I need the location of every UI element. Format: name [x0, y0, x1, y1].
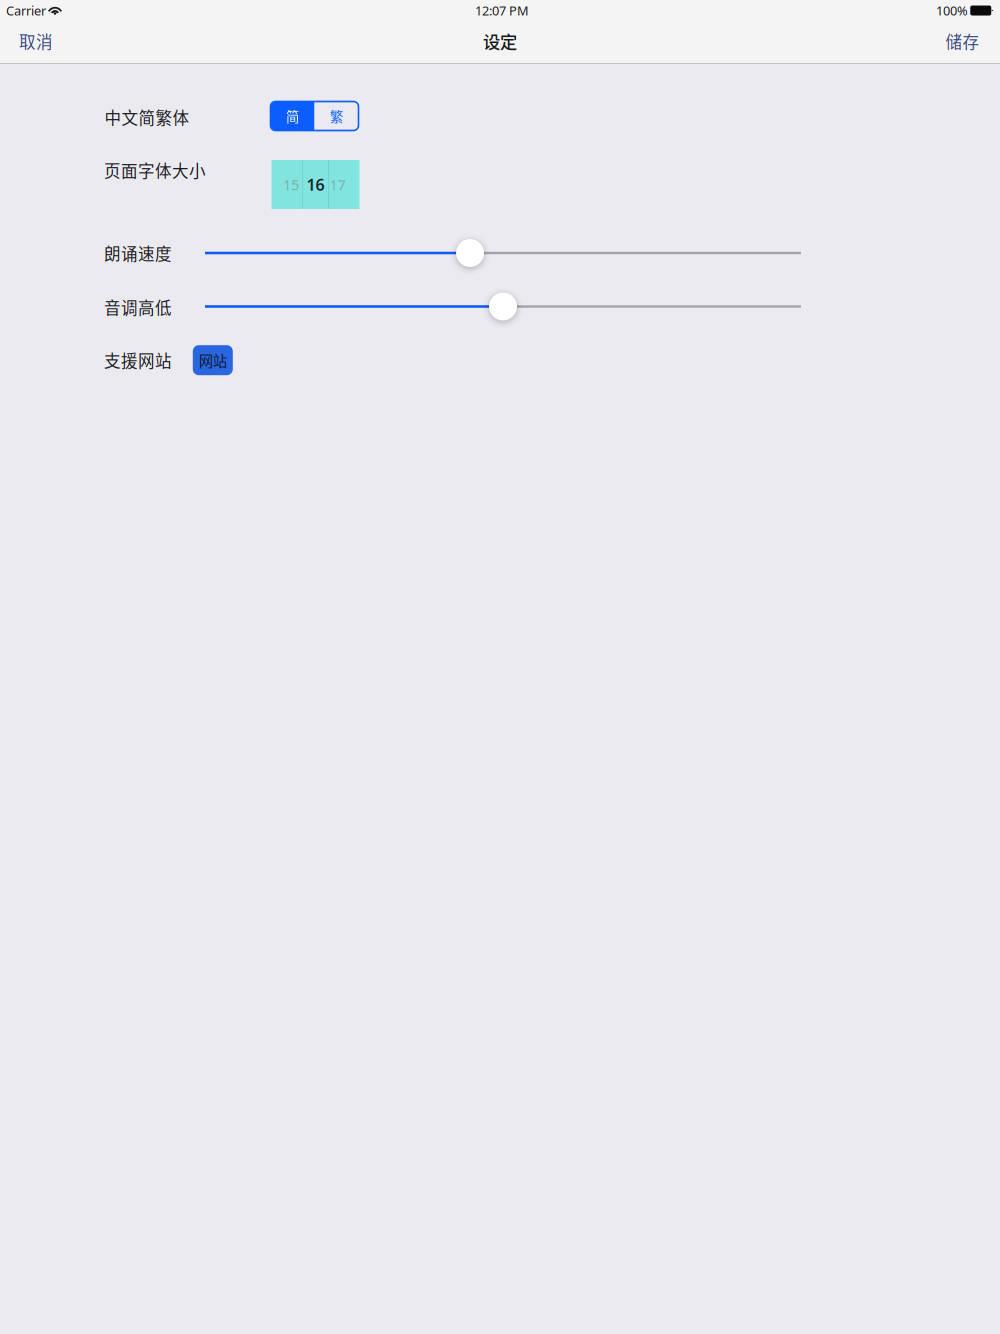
staticText: 繁 — [330, 106, 343, 126]
button[interactable]: 繁 — [314, 101, 358, 130]
staticText: 音调高低 — [104, 295, 172, 319]
staticText: 朗诵速度 — [104, 241, 172, 265]
staticText: 15 — [283, 174, 299, 194]
staticText: 页面字体大小 — [104, 158, 206, 182]
staticText: 取消 — [19, 29, 53, 53]
staticText: 储存 — [945, 29, 979, 53]
staticText: 17 — [329, 174, 345, 194]
staticText: 100% — [936, 2, 968, 19]
button[interactable]: Reading speed — [205, 238, 801, 268]
button[interactable]: Pitch — [205, 291, 801, 321]
staticText: 简 — [286, 106, 299, 126]
staticText: Carrier — [6, 2, 46, 19]
button[interactable]: Page font size — [271, 160, 359, 209]
staticText: 支援网站 — [104, 348, 172, 372]
button[interactable]: 储存 — [926, 21, 998, 61]
button[interactable]: 取消 — [0, 21, 72, 61]
staticText: 16 — [306, 174, 324, 195]
staticText: 设定 — [483, 28, 517, 54]
staticText: 中文简繁体 — [104, 105, 189, 129]
button[interactable]: 网站 — [193, 345, 233, 375]
staticText: 12:07 PM — [475, 2, 529, 19]
button[interactable]: 简 — [270, 101, 314, 130]
staticText: 网站 — [199, 350, 227, 371]
